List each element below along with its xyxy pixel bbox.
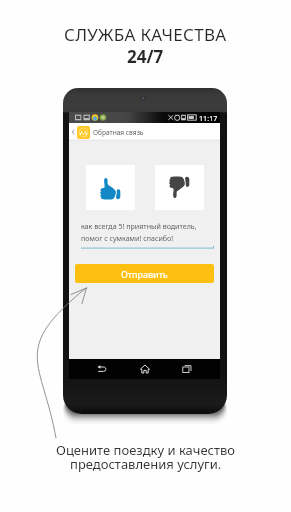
staticText: 24/7 bbox=[127, 45, 164, 68]
staticText: Отправить bbox=[121, 268, 168, 280]
button[interactable]: Dislike bbox=[155, 165, 204, 210]
staticText: как всегда 5! приятный водитель, bbox=[81, 221, 197, 231]
button[interactable]: Back bbox=[92, 359, 112, 379]
staticText: СЛУЖБА КАЧЕСТВА bbox=[64, 23, 227, 46]
staticText: предоставления услуги. bbox=[70, 455, 222, 473]
staticText: 11:17 bbox=[199, 113, 218, 123]
button[interactable]: Like bbox=[86, 165, 135, 210]
button[interactable]: Отправить bbox=[75, 264, 214, 283]
button[interactable]: как всегда 5! приятный водитель, bbox=[81, 221, 214, 249]
button[interactable]: Back bbox=[69, 123, 220, 141]
staticText: Оцените поездку и качество bbox=[56, 441, 236, 459]
button[interactable]: Home bbox=[135, 359, 155, 379]
staticText: Обратная связь bbox=[93, 128, 144, 137]
button[interactable]: Recents bbox=[177, 359, 197, 379]
staticText: помог с сумками! спасибо! bbox=[81, 233, 174, 243]
other: Back bbox=[70, 129, 76, 135]
